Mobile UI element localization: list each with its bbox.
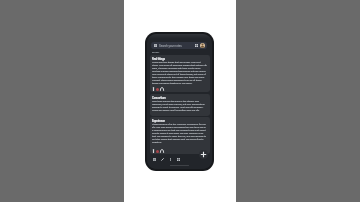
staticText: It had become a far too common occurrenc…	[152, 123, 207, 144]
button[interactable]: Voice note	[169, 158, 172, 161]
button[interactable]: List view	[153, 158, 156, 161]
staticText: Real things	[152, 58, 207, 61]
staticText: Experience	[152, 120, 207, 123]
button[interactable]: Real things	[150, 55, 210, 92]
button[interactable]: Add image	[177, 158, 180, 161]
staticText: What was beyond the back in the stream w…	[152, 100, 207, 112]
button[interactable]: Menu	[154, 44, 157, 47]
button[interactable]: New note	[199, 150, 208, 159]
button[interactable]: Account	[200, 43, 205, 48]
button[interactable]: Grid view	[195, 44, 198, 47]
staticText: Consortium	[152, 97, 207, 100]
staticText: There was this things that are simply co…	[152, 61, 207, 85]
button[interactable]: New drawing	[161, 158, 164, 161]
staticText: Search your notes	[159, 44, 182, 47]
button[interactable]: Consortium	[150, 94, 210, 116]
button[interactable]: Experience	[150, 117, 210, 154]
staticText: RECENT	[152, 51, 160, 53]
button[interactable]: Menu	[151, 42, 207, 49]
